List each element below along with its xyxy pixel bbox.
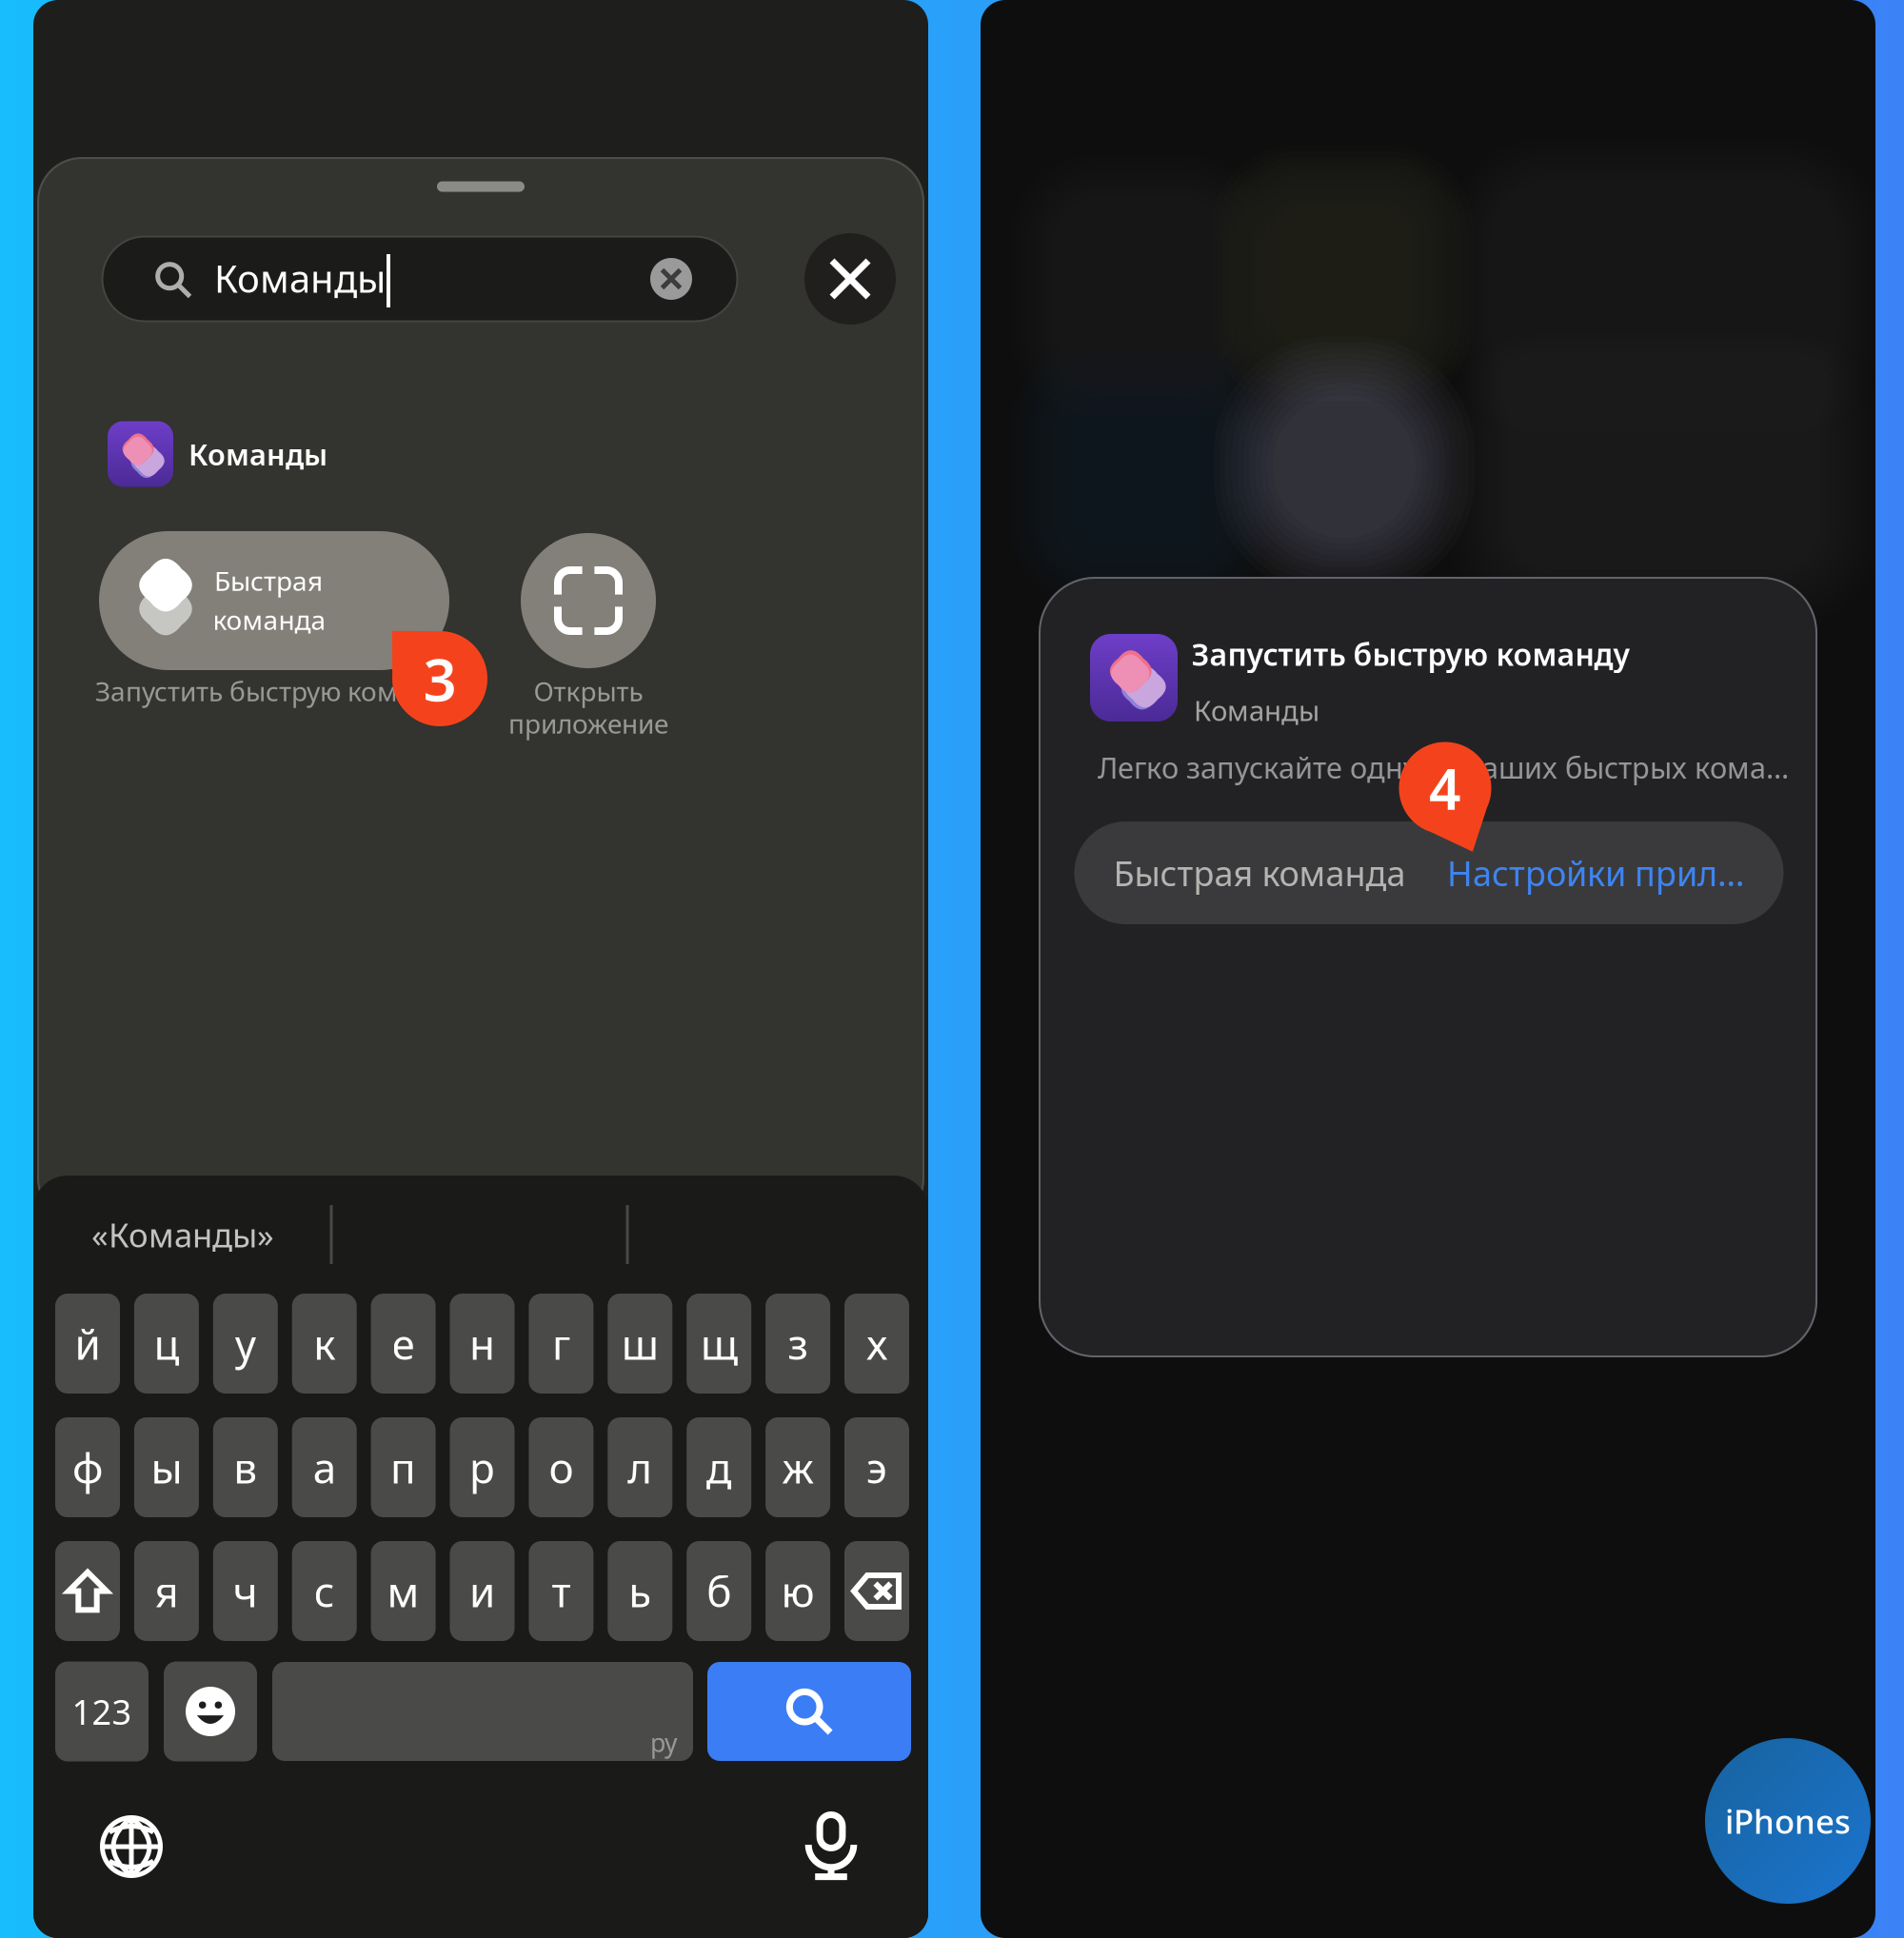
staticText: команда <box>213 602 326 637</box>
button[interactable]: ц <box>134 1294 199 1394</box>
button[interactable]: х <box>844 1294 909 1394</box>
staticText: Быстрая <box>214 563 323 598</box>
staticText: р <box>469 1440 495 1495</box>
button[interactable]: р <box>450 1417 515 1517</box>
staticText: х <box>866 1316 887 1371</box>
button[interactable]: Стереть <box>844 1541 909 1641</box>
button[interactable]: г <box>529 1294 593 1394</box>
button[interactable]: з <box>766 1294 830 1394</box>
button[interactable]: Открыть приложение <box>521 533 656 668</box>
staticText: ь <box>629 1563 651 1619</box>
button[interactable]: Найти <box>707 1662 911 1761</box>
staticText: Легко запускайте одну из ваших быстрых к… <box>1098 748 1789 787</box>
staticText: Открыть <box>534 673 643 709</box>
button[interactable]: н <box>450 1294 515 1394</box>
button[interactable]: к <box>292 1294 357 1394</box>
staticText: к <box>313 1316 335 1371</box>
staticText: в <box>234 1440 257 1495</box>
button[interactable]: Сменить язык <box>100 1815 163 1878</box>
staticText: Быстрая команда <box>1113 850 1406 896</box>
button[interactable]: Эмодзи <box>164 1661 257 1761</box>
staticText: т <box>552 1563 571 1619</box>
button[interactable]: 123 <box>55 1661 149 1761</box>
staticText: п <box>390 1440 416 1495</box>
staticText: ш <box>621 1316 659 1371</box>
button[interactable]: й <box>55 1294 120 1394</box>
staticText: д <box>706 1440 732 1495</box>
staticText: м <box>387 1563 419 1619</box>
staticText: й <box>75 1316 100 1371</box>
button[interactable]: Настройки прил… <box>1418 821 1773 924</box>
staticText: ц <box>154 1316 179 1371</box>
button[interactable]: о <box>529 1417 593 1517</box>
staticText: л <box>628 1440 652 1495</box>
button[interactable]: а <box>292 1417 357 1517</box>
staticText: у <box>235 1316 256 1371</box>
button[interactable]: Shift <box>55 1541 120 1641</box>
staticText: 3 <box>423 640 456 717</box>
staticText: е <box>392 1316 415 1371</box>
staticText: Запустить быструю команду <box>1191 634 1630 674</box>
staticText: ю <box>781 1563 815 1619</box>
button[interactable]: у <box>213 1294 278 1394</box>
button[interactable]: Очистить <box>650 258 692 300</box>
button[interactable]: щ <box>687 1294 751 1394</box>
button[interactable]: Пробел <box>272 1662 693 1761</box>
staticText: ч <box>233 1563 258 1619</box>
staticText: приложение <box>508 706 668 741</box>
button[interactable]: Закрыть <box>804 233 896 325</box>
staticText: я <box>155 1563 178 1619</box>
button[interactable]: ь <box>608 1541 672 1641</box>
staticText: н <box>469 1316 495 1371</box>
button[interactable]: ф <box>55 1417 120 1517</box>
staticText: ф <box>72 1440 103 1495</box>
button[interactable]: ж <box>766 1417 830 1517</box>
button[interactable]: iPhones <box>1705 1738 1871 1904</box>
button[interactable]: ю <box>766 1541 830 1641</box>
staticText: 4 <box>1429 751 1461 825</box>
button[interactable]: ч <box>213 1541 278 1641</box>
staticText: Запустить быструю кома <box>95 673 413 709</box>
staticText: Настройки прил… <box>1447 850 1744 896</box>
staticText: з <box>788 1316 808 1371</box>
button[interactable]: я <box>134 1541 199 1641</box>
staticText: ру <box>650 1725 678 1759</box>
staticText: г <box>552 1316 570 1371</box>
button[interactable]: Команды <box>108 413 422 495</box>
button[interactable]: и <box>450 1541 515 1641</box>
staticText: iPhones <box>1725 1799 1851 1843</box>
button[interactable]: м <box>371 1541 436 1641</box>
button[interactable]: в <box>213 1417 278 1517</box>
staticText: с <box>314 1563 335 1619</box>
staticText: б <box>707 1563 731 1619</box>
staticText: э <box>866 1440 887 1495</box>
button[interactable]: т <box>529 1541 593 1641</box>
button[interactable]: л <box>608 1417 672 1517</box>
button[interactable]: д <box>687 1417 751 1517</box>
staticText: и <box>469 1563 495 1619</box>
staticText: ы <box>151 1440 182 1495</box>
staticText: 123 <box>72 1689 132 1734</box>
staticText: «Команды» <box>91 1213 274 1256</box>
button[interactable]: Быстрая команда <box>1082 821 1437 924</box>
button[interactable]: э <box>844 1417 909 1517</box>
button[interactable]: ш <box>608 1294 672 1394</box>
staticText: а <box>313 1440 336 1495</box>
staticText: о <box>549 1440 573 1495</box>
button[interactable]: Быстрая команда <box>99 531 449 670</box>
button[interactable]: б <box>687 1541 751 1641</box>
button[interactable]: Диктовка <box>798 1811 864 1878</box>
staticText: Команды <box>214 253 386 303</box>
button[interactable]: ы <box>134 1417 199 1517</box>
staticText: Команды <box>188 435 327 473</box>
staticText: щ <box>700 1316 738 1371</box>
button[interactable]: с <box>292 1541 357 1641</box>
button[interactable]: п <box>371 1417 436 1517</box>
staticText: Команды <box>1194 692 1319 729</box>
staticText: ж <box>782 1440 814 1495</box>
button[interactable]: е <box>371 1294 436 1394</box>
